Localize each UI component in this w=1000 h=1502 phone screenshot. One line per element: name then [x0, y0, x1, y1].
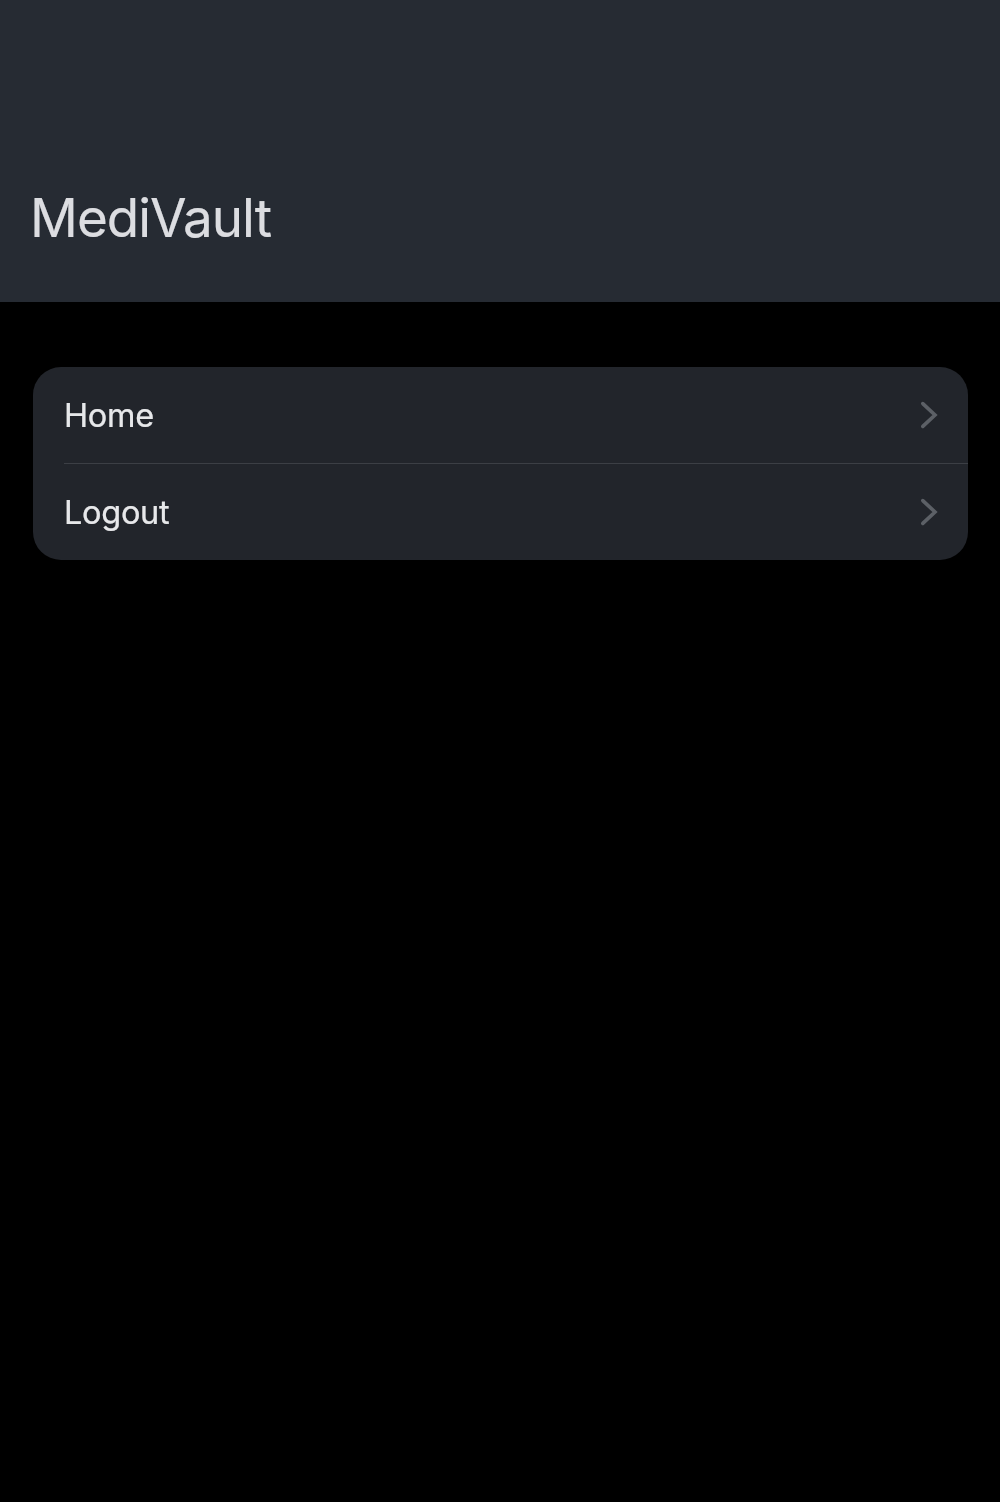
- staticText: Home: [64, 396, 154, 435]
- staticText: Logout: [64, 493, 170, 532]
- button[interactable]: Home: [33, 367, 968, 463]
- staticText: MediVault: [30, 186, 271, 250]
- button[interactable]: Logout: [33, 464, 968, 560]
